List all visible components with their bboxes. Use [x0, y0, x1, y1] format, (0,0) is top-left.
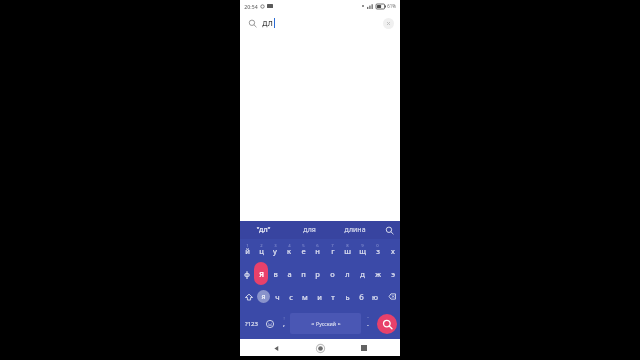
button[interactable]: ф	[240, 262, 254, 285]
button[interactable]: ю	[368, 285, 382, 308]
staticText: "	[367, 316, 369, 322]
staticText: 61%	[387, 3, 396, 9]
staticText: 1	[246, 243, 249, 249]
staticText: !	[283, 316, 285, 322]
staticText: ►	[338, 322, 341, 326]
staticText: 0	[376, 243, 379, 249]
staticText: й	[245, 246, 250, 256]
staticText: 6	[316, 243, 319, 249]
button[interactable]: 0	[370, 239, 385, 262]
staticText: .	[367, 319, 369, 329]
staticText: у	[273, 246, 277, 256]
button[interactable]: ж	[370, 262, 385, 285]
staticText: ф	[244, 269, 250, 279]
button[interactable]: 9	[355, 239, 370, 262]
button[interactable]: х	[385, 239, 400, 262]
button[interactable]: Backspace	[382, 285, 400, 308]
staticText: 7	[331, 243, 334, 249]
staticText: г	[331, 246, 335, 256]
button[interactable]: 1	[240, 239, 254, 262]
button[interactable]: More suggestions	[378, 221, 400, 239]
button[interactable]: Emoji	[262, 308, 278, 339]
button[interactable]: "	[361, 308, 374, 339]
button[interactable]: б	[354, 285, 368, 308]
staticText: м	[302, 292, 308, 302]
button[interactable]: Shift	[240, 285, 257, 308]
button[interactable]: д	[355, 262, 370, 285]
button[interactable]: 6	[310, 239, 325, 262]
staticText: а	[287, 269, 292, 279]
button[interactable]: длина	[332, 221, 378, 239]
button[interactable]: а	[282, 262, 296, 285]
button[interactable]: л	[340, 262, 355, 285]
staticText: дл	[262, 17, 273, 29]
button[interactable]: для	[286, 221, 332, 239]
staticText: н	[315, 246, 320, 256]
staticText: л	[345, 269, 350, 279]
staticText: б	[359, 292, 364, 302]
staticText: х	[391, 246, 395, 256]
button[interactable]: п	[296, 262, 310, 285]
staticText: ◄	[311, 322, 314, 326]
staticText: 3	[274, 243, 277, 249]
staticText: 4	[288, 243, 291, 249]
button[interactable]: о	[325, 262, 340, 285]
staticText: и	[317, 292, 322, 302]
button[interactable]: ч	[270, 285, 284, 308]
button[interactable]: 2	[254, 239, 268, 262]
button[interactable]: с	[284, 285, 298, 308]
button[interactable]: Recents	[356, 340, 372, 356]
staticText: 9	[361, 243, 364, 249]
staticText: з	[376, 246, 380, 256]
staticText: "дл"	[256, 225, 271, 235]
staticText: д	[360, 269, 365, 279]
staticText: длина	[344, 225, 366, 235]
staticText: ц	[259, 246, 264, 256]
button[interactable]: ◄	[290, 313, 361, 334]
button[interactable]: м	[298, 285, 312, 308]
staticText: р	[315, 269, 320, 279]
staticText: ш	[344, 246, 351, 256]
staticText: э	[391, 269, 395, 279]
staticText: в	[273, 269, 278, 279]
button[interactable]: Home	[312, 340, 328, 356]
button[interactable]: э	[385, 262, 400, 285]
button[interactable]: 4	[282, 239, 296, 262]
staticText: ь	[345, 292, 350, 302]
button[interactable]: Back	[268, 340, 284, 356]
staticText: ю	[372, 292, 378, 302]
button[interactable]: "дл"	[240, 221, 286, 239]
button[interactable]: я	[254, 262, 268, 285]
button[interactable]: !	[278, 308, 290, 339]
staticText: о	[330, 269, 335, 279]
button[interactable]: р	[310, 262, 325, 285]
button[interactable]: Search	[246, 17, 258, 29]
button[interactable]: ь	[340, 285, 354, 308]
button[interactable]: и	[312, 285, 326, 308]
staticText: ч	[275, 292, 280, 302]
button[interactable]: Search	[377, 314, 397, 334]
button[interactable]: 8	[340, 239, 355, 262]
staticText: с	[289, 292, 293, 302]
button[interactable]: 3	[268, 239, 282, 262]
button[interactable]: ?123	[240, 308, 262, 339]
staticText: 8	[346, 243, 349, 249]
button[interactable]: Clear	[383, 18, 394, 29]
staticText: я	[259, 268, 264, 279]
staticText: 2	[260, 243, 263, 249]
staticText: к	[287, 246, 291, 256]
button[interactable]: 7	[325, 239, 340, 262]
staticText: п	[301, 269, 306, 279]
staticText: я	[261, 292, 266, 302]
staticText: 5	[302, 243, 305, 249]
staticText: ж	[375, 269, 381, 279]
button[interactable]: 5	[296, 239, 310, 262]
button[interactable]: в	[268, 262, 282, 285]
button[interactable]: я	[257, 285, 270, 308]
staticText: ?123	[245, 320, 258, 328]
staticText: е	[301, 246, 306, 256]
staticText: 20:54	[244, 3, 258, 10]
staticText: щ	[359, 246, 366, 256]
button[interactable]: т	[326, 285, 340, 308]
staticText: ,	[283, 319, 285, 329]
